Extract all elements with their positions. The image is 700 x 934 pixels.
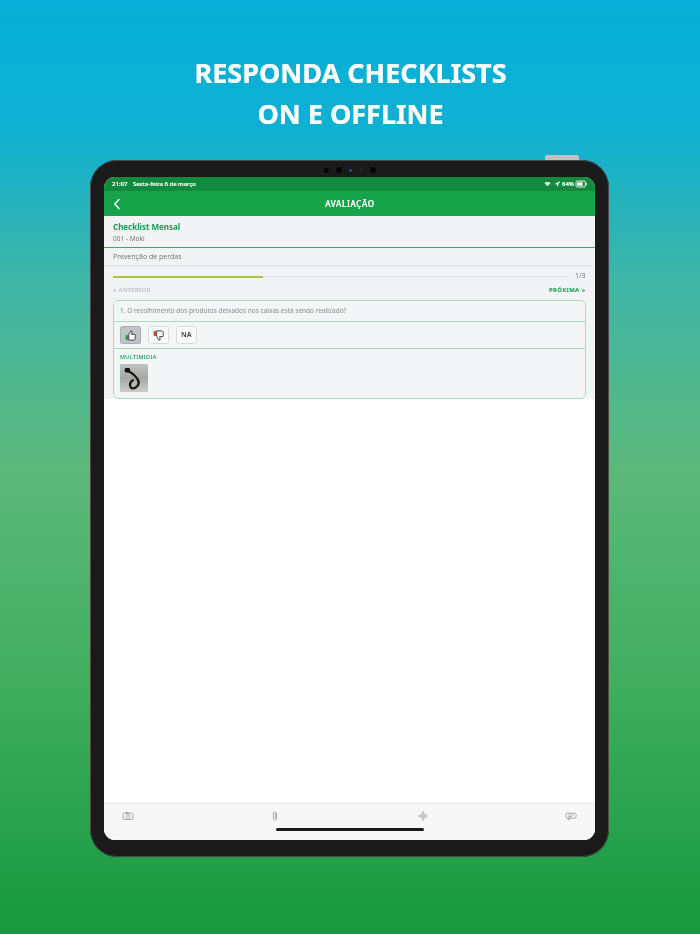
staticText: 1. O recolhimento dos produtos deixados … [120, 306, 347, 315]
button[interactable]: PRÓXIMA » [549, 285, 586, 295]
button[interactable]: Attach file [264, 805, 286, 827]
staticText: AVALIAÇÃO [325, 198, 375, 209]
staticText: 1/3 [575, 271, 586, 281]
staticText: ON E OFFLINE [257, 95, 444, 132]
staticText: PRÓXIMA » [549, 286, 586, 294]
staticText: Checklist Mensal [113, 221, 181, 232]
button[interactable]: Yes [120, 326, 141, 344]
staticText: RESPONDA CHECKLISTS [194, 54, 507, 91]
button[interactable]: Photo attachment [120, 364, 148, 392]
staticText: 64% [562, 180, 574, 188]
button[interactable]: No [148, 326, 169, 344]
button[interactable]: Camera [117, 805, 139, 827]
staticText: MULTIMIDIA [120, 353, 157, 360]
button[interactable]: « ANTERIOR [113, 285, 151, 295]
staticText: Sexta-feira 6 de março [133, 180, 196, 188]
staticText: NA [181, 330, 192, 340]
button[interactable]: Back [104, 191, 129, 216]
button[interactable]: Location [412, 805, 434, 827]
staticText: Prevenção de perdas [113, 252, 182, 262]
staticText: « ANTERIOR [113, 286, 151, 294]
staticText: 001 - Moki [113, 234, 145, 243]
staticText: 21:07 [112, 180, 128, 188]
button[interactable]: Not applicable [176, 326, 197, 344]
button[interactable]: Comments [560, 805, 582, 827]
